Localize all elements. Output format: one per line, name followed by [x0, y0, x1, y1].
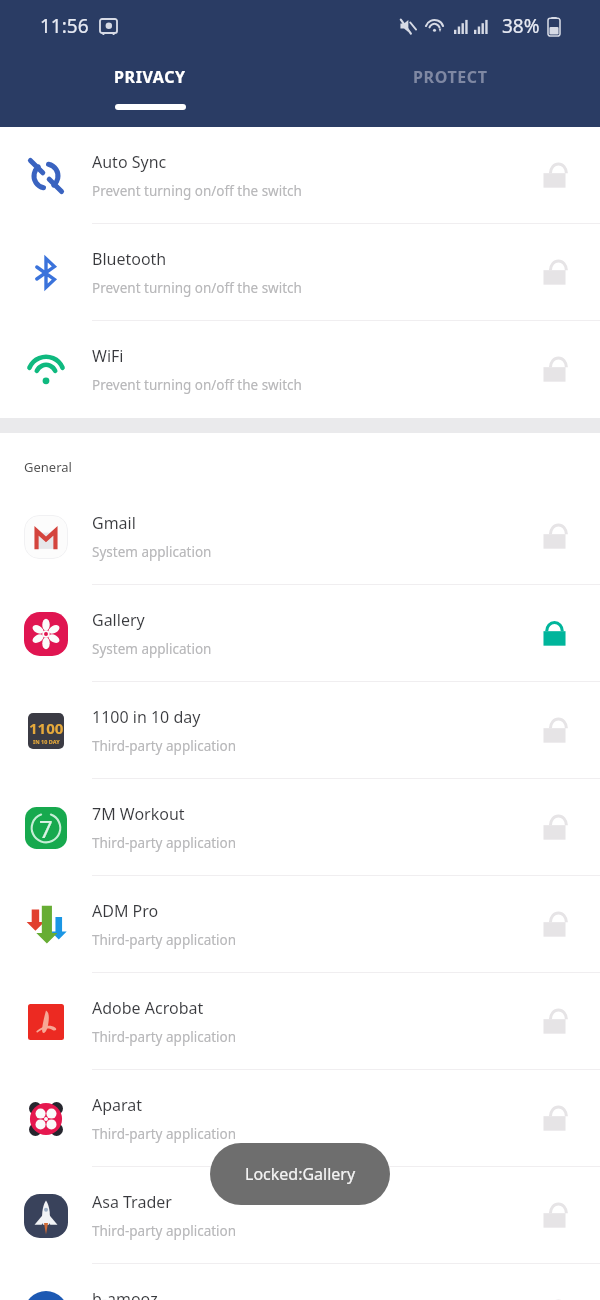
button[interactable]: Asa Trader — [0, 1167, 600, 1264]
button[interactable]: PROTECT — [300, 52, 600, 127]
staticText: IN 10 DAY — [33, 738, 60, 745]
button[interactable]: Lock Aparat — [508, 1070, 600, 1167]
button[interactable]: Lock WiFi — [508, 321, 600, 418]
other: Unlocked — [540, 910, 569, 939]
staticText: Third-party application — [92, 834, 237, 852]
other: Unlocked — [540, 1104, 569, 1133]
staticText: Gmail — [92, 512, 136, 534]
button[interactable]: Auto Sync — [0, 127, 600, 224]
button[interactable]: Lock Asa Trader — [508, 1167, 600, 1264]
staticText: Locked:Gallery — [245, 1163, 356, 1185]
staticText: 38% — [502, 13, 540, 39]
staticText: Third-party application — [92, 737, 237, 755]
button[interactable]: Unlock Gallery — [508, 585, 600, 682]
staticText: 7 — [39, 812, 53, 845]
button[interactable]: 7 — [0, 779, 600, 876]
staticText: Adobe Acrobat — [92, 997, 204, 1019]
button[interactable]: Lock Bluetooth — [508, 224, 600, 321]
button[interactable]: Lock 1100 in 10 day — [508, 682, 600, 779]
staticText: 1100 — [29, 718, 64, 738]
staticText: Gallery — [92, 609, 145, 631]
button[interactable]: Lock ADM Pro — [508, 876, 600, 973]
button[interactable]: WiFi — [0, 321, 600, 418]
staticText: Asa Trader — [92, 1191, 172, 1213]
staticText: Aparat — [92, 1094, 143, 1116]
staticText: Prevent turning on/off the switch — [92, 376, 302, 394]
staticText: WiFi — [92, 345, 124, 367]
button[interactable]: ADM Pro — [0, 876, 600, 973]
other: Unlocked — [540, 1007, 569, 1036]
other: Unlocked — [540, 161, 569, 190]
button[interactable]: Gallery — [0, 585, 600, 682]
staticText: 7M Workout — [92, 803, 185, 825]
other: Unlocked — [540, 355, 569, 384]
staticText: PRIVACY — [114, 66, 186, 88]
button[interactable]: Bluetooth — [0, 224, 600, 321]
staticText: Third-party application — [92, 931, 237, 949]
staticText: b-amooz — [92, 1288, 158, 1300]
staticText: 1100 in 10 day — [92, 706, 201, 728]
other: Unlocked — [540, 813, 569, 842]
staticText: Bluetooth — [92, 248, 167, 270]
button[interactable]: 1100 — [0, 682, 600, 779]
staticText: ADM Pro — [92, 900, 159, 922]
button[interactable]: Lock 7M Workout — [508, 779, 600, 876]
other: Locked — [540, 619, 569, 648]
staticText: Auto Sync — [92, 151, 167, 173]
button[interactable]: Lock Adobe Acrobat — [508, 973, 600, 1070]
button[interactable]: Aparat — [0, 1070, 600, 1167]
button[interactable]: Lock Gmail — [508, 488, 600, 585]
other: Unlocked — [540, 522, 569, 551]
staticText: 11:56 — [40, 13, 89, 39]
staticText: Third-party application — [92, 1028, 237, 1046]
staticText: Prevent turning on/off the switch — [92, 279, 302, 297]
staticText: System application — [92, 543, 212, 561]
button[interactable]: PRIVACY — [0, 52, 300, 127]
staticText: System application — [92, 640, 212, 658]
staticText: Prevent turning on/off the switch — [92, 182, 302, 200]
button[interactable]: Lock Auto Sync — [508, 127, 600, 224]
button[interactable]: b — [0, 1264, 600, 1300]
staticText: General — [24, 458, 72, 476]
button[interactable]: Adobe Acrobat — [0, 973, 600, 1070]
staticText: PROTECT — [413, 66, 488, 88]
other: Unlocked — [540, 716, 569, 745]
button[interactable]: Gmail — [0, 488, 600, 585]
other: Unlocked — [540, 258, 569, 287]
other: Unlocked — [540, 1201, 569, 1230]
staticText: Third-party application — [92, 1125, 237, 1143]
staticText: Third-party application — [92, 1222, 237, 1240]
